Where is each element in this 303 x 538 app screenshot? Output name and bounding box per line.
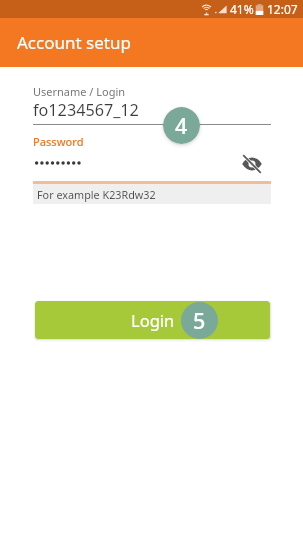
staticText: 4 <box>175 111 188 140</box>
staticText: For example K23Rdw32 <box>37 187 156 202</box>
staticText: 41% <box>230 1 254 17</box>
button[interactable]: Password <box>33 131 271 184</box>
staticText: Password <box>33 134 84 149</box>
button[interactable]: Show password <box>240 152 264 176</box>
staticText: Username / Login <box>33 84 126 99</box>
staticText: fo1234567_12 <box>33 99 139 121</box>
staticText: 12:07 <box>267 1 298 17</box>
staticText: Login <box>131 309 175 331</box>
staticText: 5 <box>193 306 206 335</box>
staticText: Account setup <box>17 31 131 54</box>
button[interactable]: Login <box>35 301 270 339</box>
button[interactable]: Username / Login <box>33 81 271 125</box>
